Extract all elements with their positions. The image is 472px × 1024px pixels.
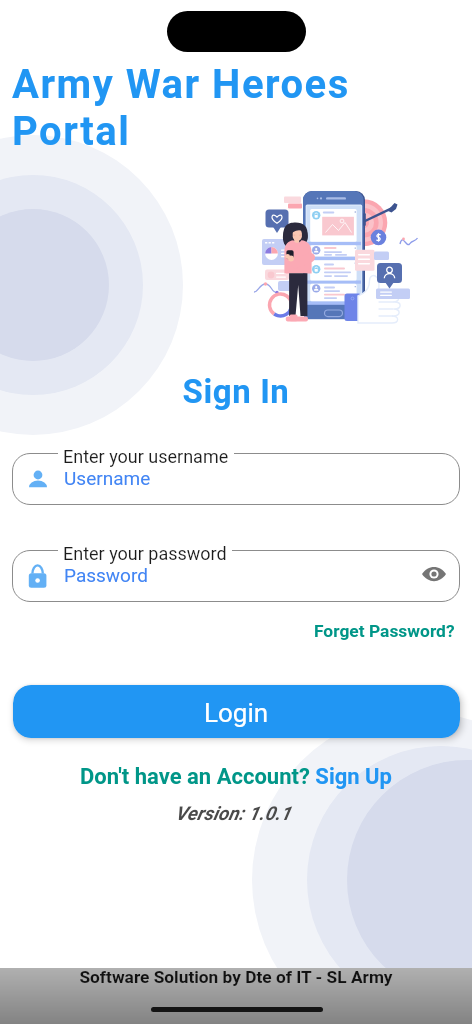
staticText: Don't have an Account? Sign Up [0,764,472,1024]
staticText: Forget Password? [314,621,455,641]
staticText: Version: 1.0.1 [0,802,469,1024]
staticText: Software Solution by Dte of IT - SL Army [0,967,472,1024]
button[interactable]: Username [12,453,460,505]
button[interactable]: Forget Password? [295,618,455,644]
staticText: Sign In [0,372,472,1024]
button[interactable]: Login [13,685,460,738]
staticText: Army War Heroes Portal [12,61,350,155]
staticText: Password [64,564,148,586]
button[interactable]: Password [12,550,460,602]
other: Show password [410,560,458,588]
staticText: Username [64,467,151,489]
staticText: Enter your username [63,446,229,467]
staticText: Login [204,698,269,728]
staticText: Enter your password [63,543,227,564]
